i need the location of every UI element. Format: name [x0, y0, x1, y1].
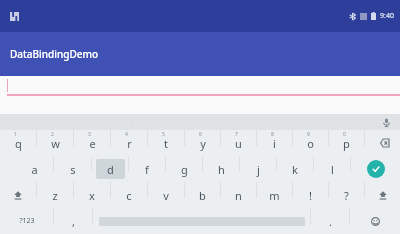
staticText: t	[164, 136, 168, 151]
staticText: 3	[88, 131, 91, 138]
staticText: 8	[271, 131, 274, 138]
staticText: a	[31, 162, 38, 177]
button[interactable]: o	[293, 130, 328, 156]
button[interactable]: f	[129, 156, 165, 182]
button[interactable]: p	[329, 130, 364, 156]
staticText: n	[235, 188, 242, 203]
staticText: d	[107, 162, 114, 177]
button[interactable]: c	[111, 182, 147, 208]
button[interactable]: Backspace	[365, 130, 400, 156]
staticText: 0	[343, 131, 346, 138]
staticText: 2	[51, 131, 54, 138]
button[interactable]: d	[92, 156, 128, 182]
button[interactable]: k	[277, 156, 313, 182]
button[interactable]: u	[221, 130, 256, 156]
staticText: i	[273, 136, 276, 151]
staticText: e	[89, 136, 96, 151]
button[interactable]: !	[293, 182, 328, 208]
button[interactable]: s	[54, 156, 91, 182]
staticText: r	[127, 136, 132, 151]
staticText: !	[309, 188, 312, 203]
button[interactable]: j	[240, 156, 276, 182]
staticText: s	[70, 162, 76, 177]
button[interactable]: Shift	[0, 182, 36, 208]
staticText: DataBindingDemo	[10, 47, 99, 61]
staticText: 5	[162, 131, 165, 138]
button[interactable]: z	[37, 182, 73, 208]
staticText: b	[199, 188, 206, 203]
button[interactable]: e	[74, 130, 110, 156]
button[interactable]: Emoji	[350, 208, 400, 234]
staticText: f	[145, 162, 149, 177]
staticText: m	[269, 188, 280, 203]
button[interactable]: b	[185, 182, 220, 208]
staticText: 9:40	[380, 11, 394, 21]
button[interactable]: x	[74, 182, 110, 208]
staticText: y	[200, 136, 206, 151]
button[interactable]: i	[257, 130, 292, 156]
staticText: ,	[72, 214, 75, 229]
button[interactable]: .	[311, 208, 349, 234]
button[interactable]: ,	[54, 208, 92, 234]
staticText: l	[331, 162, 334, 177]
staticText: 1	[14, 131, 17, 138]
button[interactable]: n	[221, 182, 256, 208]
button[interactable]: ?	[329, 182, 364, 208]
button[interactable]: q	[0, 130, 36, 156]
staticText: x	[89, 188, 95, 203]
button[interactable]: a	[16, 156, 53, 182]
button[interactable]: h	[203, 156, 239, 182]
button[interactable]: l	[314, 156, 350, 182]
staticText: g	[181, 162, 188, 177]
staticText: 4	[125, 131, 128, 138]
button[interactable]: t	[148, 130, 184, 156]
staticText: o	[307, 136, 314, 151]
button[interactable]: Shift	[365, 182, 400, 208]
button[interactable]: y	[185, 130, 220, 156]
staticText: w	[51, 136, 60, 151]
staticText: 9	[307, 131, 310, 138]
staticText: ?123	[19, 216, 35, 226]
staticText: p	[343, 136, 350, 151]
staticText: c	[126, 188, 132, 203]
button[interactable]: w	[37, 130, 73, 156]
staticText: .	[329, 214, 332, 229]
staticText: 7	[235, 131, 238, 138]
staticText: 6	[199, 131, 202, 138]
staticText: z	[52, 188, 58, 203]
staticText: j	[257, 162, 260, 177]
staticText: k	[292, 162, 298, 177]
button[interactable]: Voice input	[380, 116, 392, 128]
button[interactable]: Space	[93, 208, 310, 234]
button[interactable]: g	[166, 156, 202, 182]
button[interactable]: r	[111, 130, 147, 156]
staticText: v	[163, 188, 169, 203]
button[interactable]: m	[257, 182, 292, 208]
staticText: ?	[344, 188, 349, 203]
staticText: h	[218, 162, 225, 177]
button[interactable]: ?123	[0, 208, 53, 234]
button[interactable]: v	[148, 182, 184, 208]
staticText: u	[235, 136, 242, 151]
staticText: q	[15, 136, 22, 151]
button[interactable]: Enter	[351, 156, 400, 182]
